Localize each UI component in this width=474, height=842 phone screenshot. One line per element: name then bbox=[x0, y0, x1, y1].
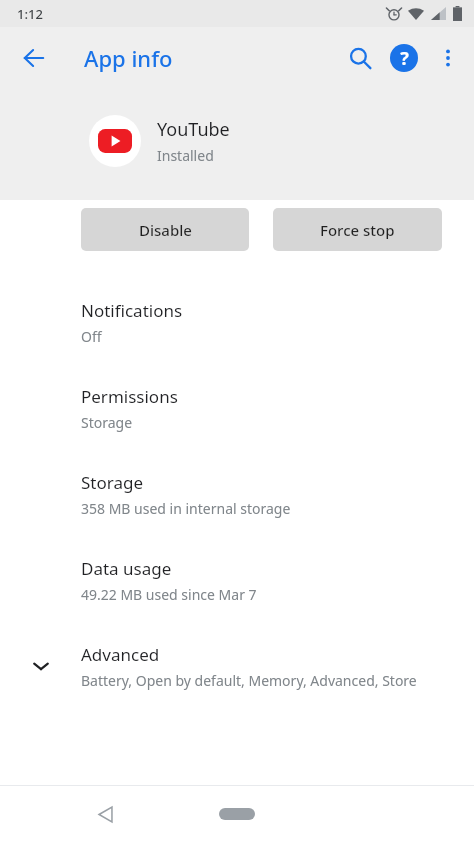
staticText: Off bbox=[81, 327, 102, 346]
button[interactable]: Back bbox=[14, 38, 54, 78]
staticText: App info bbox=[84, 43, 173, 73]
button[interactable]: Notifications bbox=[0, 279, 474, 365]
button[interactable]: Disable bbox=[81, 208, 249, 251]
button[interactable]: Storage bbox=[0, 451, 474, 537]
staticText: Advanced bbox=[81, 643, 160, 666]
staticText: Storage bbox=[81, 413, 133, 432]
staticText: 49.22 MB used since Mar 7 bbox=[81, 585, 257, 604]
button[interactable]: YouTube bbox=[0, 89, 474, 200]
button[interactable]: Help bbox=[382, 36, 426, 80]
staticText: ? bbox=[400, 46, 409, 71]
staticText: Data usage bbox=[81, 557, 172, 580]
button[interactable]: Data usage bbox=[0, 537, 474, 623]
button[interactable]: Permissions bbox=[0, 365, 474, 451]
button[interactable]: Search bbox=[338, 36, 382, 80]
button[interactable]: Advanced bbox=[0, 623, 474, 709]
button[interactable]: Force stop bbox=[273, 208, 442, 251]
button[interactable]: More options bbox=[426, 36, 470, 80]
button[interactable]: Back bbox=[83, 792, 127, 836]
staticText: Disable bbox=[139, 220, 192, 240]
staticText: YouTube bbox=[157, 117, 230, 142]
staticText: Storage bbox=[81, 471, 144, 494]
staticText: 358 MB used in internal storage bbox=[81, 499, 291, 518]
staticText: 1:12 bbox=[17, 5, 43, 23]
staticText: Permissions bbox=[81, 385, 178, 408]
staticText: Battery, Open by default, Memory, Advanc… bbox=[81, 671, 417, 690]
staticText: Installed bbox=[157, 146, 214, 165]
staticText: Force stop bbox=[320, 220, 395, 240]
button[interactable]: Home bbox=[215, 792, 259, 836]
staticText: Notifications bbox=[81, 299, 183, 322]
